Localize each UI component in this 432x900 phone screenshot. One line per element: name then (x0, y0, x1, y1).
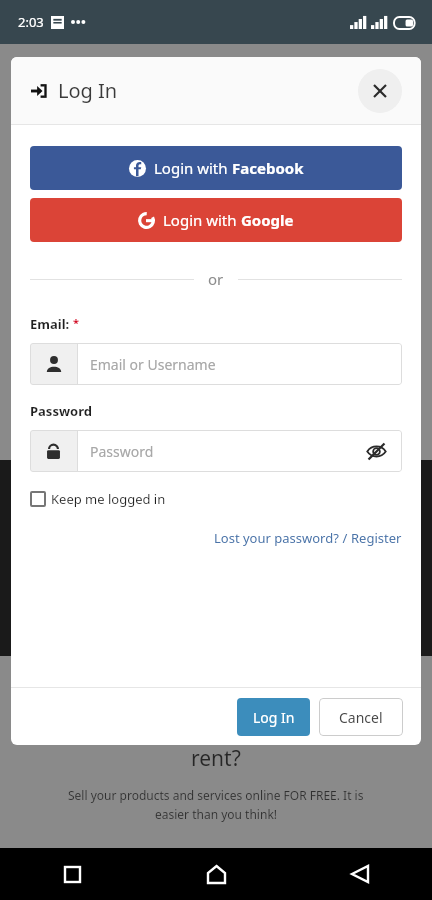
staticText: * (73, 315, 79, 330)
staticText: Register (351, 529, 402, 547)
staticText: / (339, 529, 351, 547)
staticText: Password (90, 442, 154, 461)
staticText: Cancel (339, 708, 383, 727)
staticText: Log In (58, 77, 118, 104)
button[interactable]: Cancel (319, 698, 403, 736)
staticText: Facebook (232, 158, 304, 178)
staticText: rent? (191, 744, 241, 773)
staticText: or (208, 269, 224, 289)
staticText: 2:03 (18, 13, 44, 31)
staticText: Email: (30, 315, 70, 333)
button[interactable]: Recent apps (49, 851, 95, 897)
button[interactable]: Login with (30, 146, 402, 190)
staticText: Keep me logged in (51, 490, 166, 508)
staticText: Login with (154, 158, 232, 178)
button[interactable]: Register (351, 529, 402, 547)
button[interactable]: Lost your password? (214, 529, 339, 547)
button[interactable]: Keep me logged in (30, 490, 166, 508)
staticText: Lost your password? (214, 529, 339, 547)
staticText: Password (30, 402, 92, 420)
staticText: easier than you think! (155, 806, 278, 822)
button[interactable]: Login with (30, 198, 402, 242)
button[interactable]: Back (337, 851, 383, 897)
button[interactable]: Password (30, 430, 402, 472)
staticText: Sell your products and services online F… (68, 787, 364, 803)
button[interactable]: Home (193, 851, 239, 897)
staticText: Log In (253, 708, 295, 727)
button[interactable]: Show password (364, 439, 388, 463)
button[interactable]: Log In (237, 698, 310, 736)
button[interactable]: Close (358, 69, 402, 113)
button[interactable]: Email or Username (30, 343, 402, 385)
staticText: Email or Username (90, 355, 216, 374)
staticText: Login with (163, 210, 241, 230)
staticText: Google (241, 210, 294, 230)
